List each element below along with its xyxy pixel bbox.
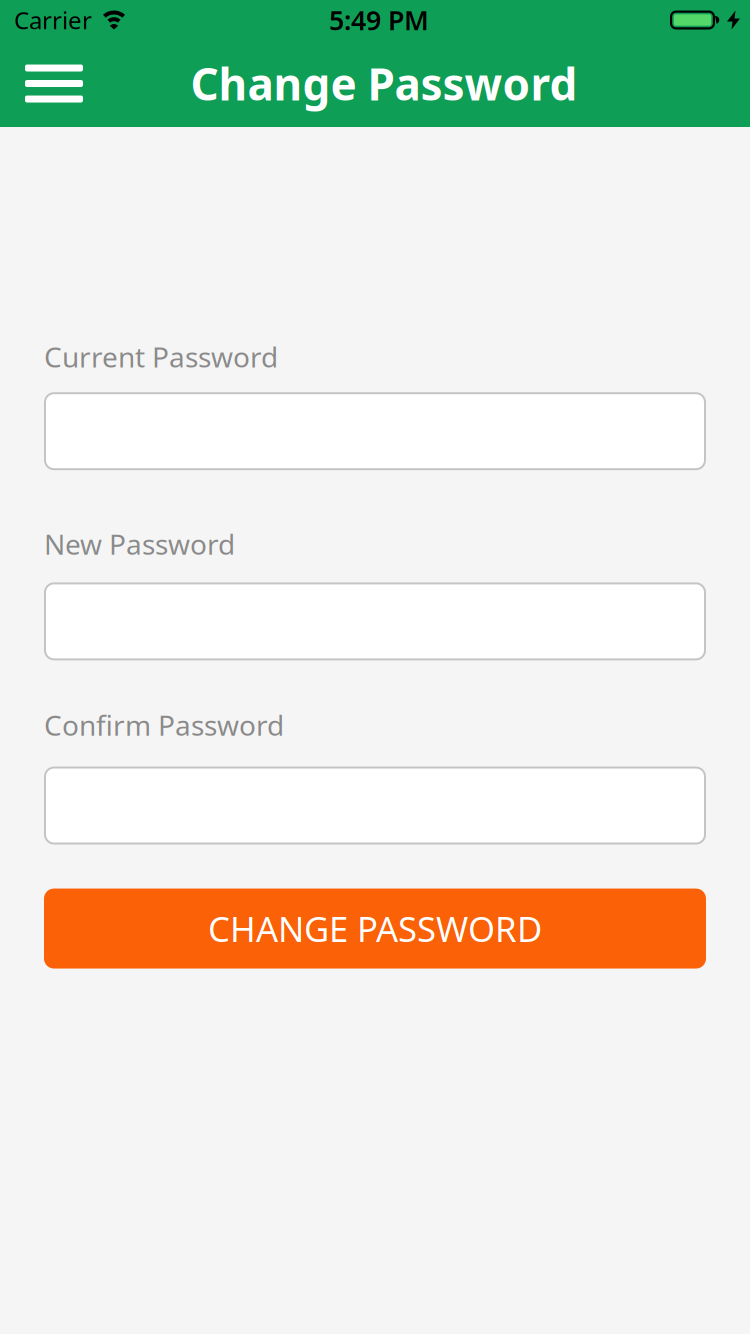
staticText: 5:49 PM xyxy=(329,2,429,38)
staticText: Confirm Password xyxy=(44,706,284,744)
staticText: Current Password xyxy=(44,338,278,375)
button[interactable]: Password text field xyxy=(44,766,706,844)
staticText: New Password xyxy=(44,525,235,562)
staticText: Change Password xyxy=(190,54,577,113)
button[interactable]: Menu xyxy=(0,44,83,122)
button[interactable]: Password text field xyxy=(44,582,706,660)
staticText: CHANGE PASSWORD xyxy=(208,905,542,951)
button[interactable]: CHANGE PASSWORD xyxy=(44,888,706,968)
staticText: Carrier xyxy=(14,4,92,36)
button[interactable]: Password text field xyxy=(44,392,706,470)
